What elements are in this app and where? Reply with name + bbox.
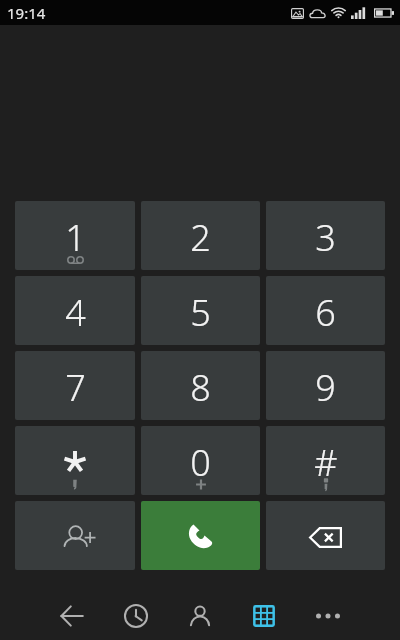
staticText: 4 [65, 288, 86, 337]
button[interactable]: Recents [104, 571, 168, 640]
button[interactable]: 7 [15, 351, 135, 420]
button[interactable]: More options [296, 571, 360, 640]
button[interactable]: 4 [15, 276, 135, 345]
button[interactable]: 3 [266, 201, 385, 270]
staticText: # [314, 438, 338, 487]
button[interactable]: 1 [15, 201, 135, 270]
button[interactable]: 5 [141, 276, 260, 345]
button[interactable]: 6 [266, 276, 385, 345]
button[interactable]: Call [141, 501, 260, 570]
staticText: 9 [315, 363, 336, 412]
staticText: 1 [65, 213, 86, 262]
button[interactable] [15, 426, 135, 495]
staticText: 3 [315, 213, 336, 262]
staticText: 7 [65, 363, 86, 412]
staticText: 6 [315, 288, 336, 337]
button[interactable]: Back [40, 571, 104, 640]
staticText: 8 [190, 363, 211, 412]
button[interactable]: 2 [141, 201, 260, 270]
button[interactable]: 0 [141, 426, 260, 495]
button[interactable]: Add contact [15, 501, 135, 570]
button[interactable]: 9 [266, 351, 385, 420]
staticText: 2 [190, 213, 211, 262]
staticText: 19:14 [7, 3, 46, 23]
staticText: 0 [190, 438, 211, 487]
button[interactable]: Keypad [232, 571, 296, 640]
staticText: 5 [190, 288, 211, 337]
button[interactable]: 8 [141, 351, 260, 420]
button[interactable]: # [266, 426, 385, 495]
button[interactable]: Contacts [168, 571, 232, 640]
button[interactable]: Backspace [266, 501, 385, 570]
